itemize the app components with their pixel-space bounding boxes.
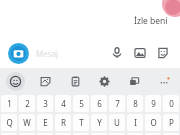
button[interactable]: Q [1,114,17,131]
staticText: 3 [43,98,48,109]
button[interactable]: GIF stickers [36,72,55,91]
staticText: E [43,117,48,128]
button[interactable]: İzle beni [134,15,168,27]
staticText: R [61,117,66,128]
button[interactable]: Stickers [154,44,172,62]
staticText: 9 [151,98,156,109]
staticText: 7 [115,98,120,109]
staticText: 5 [79,98,84,109]
button[interactable]: E [37,114,53,131]
button[interactable]: Camera [8,43,29,64]
button[interactable]: W [19,114,35,131]
button[interactable]: 8 [127,95,143,112]
button[interactable]: 3 [37,95,53,112]
button[interactable]: 1 [1,95,17,112]
staticText: U [114,117,120,128]
button[interactable]: T [73,114,89,131]
button[interactable]: 7 [109,95,125,112]
staticText: Y [97,117,102,128]
staticText: 8 [133,98,138,109]
button[interactable]: Keyboard mode [125,72,144,91]
button[interactable]: U [109,114,125,131]
staticText: O [150,117,157,128]
staticText: P [169,117,174,128]
staticText: W [23,117,31,128]
staticText: 4 [61,98,66,109]
staticText: 2 [25,98,30,109]
staticText: Mesaj [36,48,108,59]
button[interactable]: Attach image [131,44,149,62]
button[interactable]: Y [91,114,107,131]
button[interactable]: Clipboard [66,72,85,91]
button[interactable]: Emoji [6,72,25,91]
button[interactable]: P [163,114,179,131]
staticText: Q [6,117,13,128]
button[interactable]: 4 [55,95,71,112]
button[interactable]: 9 [145,95,161,112]
button[interactable]: More options [155,72,174,91]
button[interactable]: 5 [73,95,89,112]
button[interactable]: R [55,114,71,131]
button[interactable]: 2 [19,95,35,112]
button[interactable]: 0 [163,95,179,112]
button[interactable]: I [127,114,143,131]
button[interactable]: 6 [91,95,107,112]
staticText: 0 [169,98,174,109]
staticText: T [79,117,84,128]
staticText: I [134,117,137,128]
button[interactable]: Keyboard settings [95,72,114,91]
button[interactable]: Voice message [108,44,126,62]
button[interactable]: O [145,114,161,131]
staticText: 6 [97,98,102,109]
staticText: 1 [7,98,12,109]
